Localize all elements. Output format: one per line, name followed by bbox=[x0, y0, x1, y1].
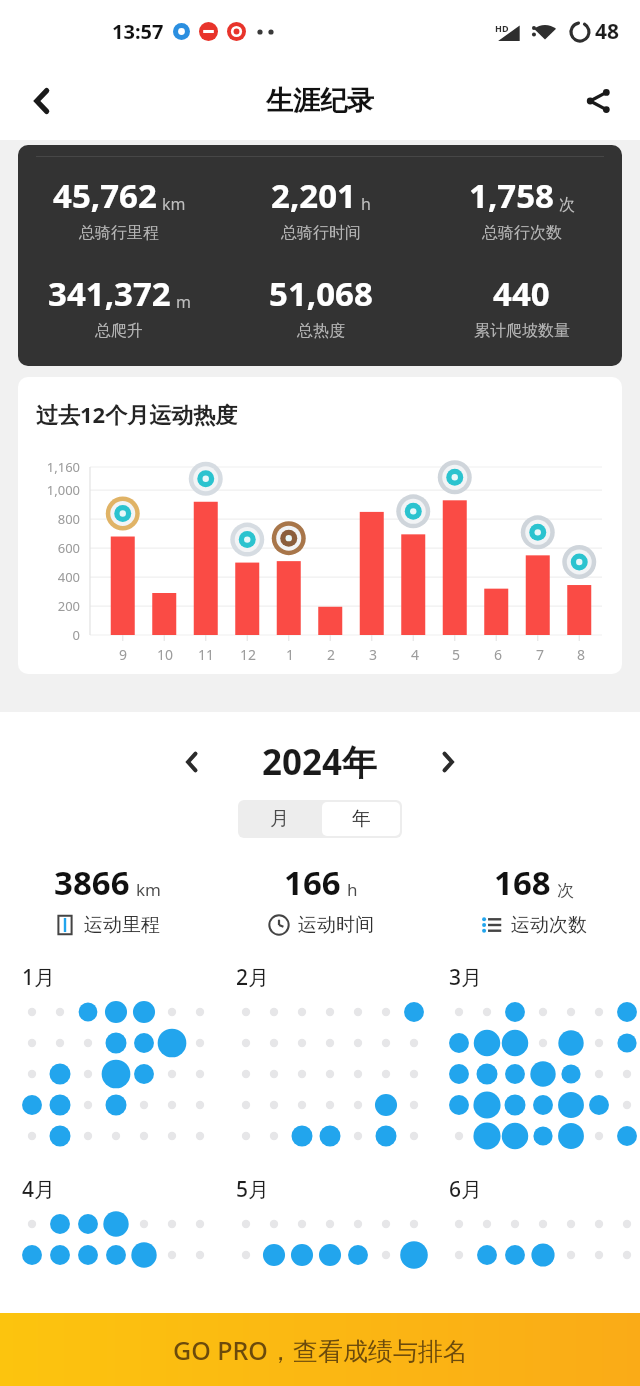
staticText: 9 bbox=[111, 645, 135, 664]
button[interactable]: 3月 bbox=[427, 963, 640, 1161]
staticText: 5 bbox=[444, 645, 468, 664]
staticText: 运动里程 bbox=[84, 913, 160, 937]
staticText: 总爬升 bbox=[95, 321, 143, 341]
staticText: 2 bbox=[319, 645, 343, 664]
staticText: 年 bbox=[352, 807, 371, 831]
staticText: 过去12个月运动热度 bbox=[36, 399, 238, 429]
staticText: 4 bbox=[403, 645, 427, 664]
staticText: HD bbox=[495, 22, 509, 34]
staticText: 2024年 bbox=[262, 738, 378, 786]
staticText: 7 bbox=[528, 645, 552, 664]
button[interactable]: 4月 bbox=[0, 1175, 214, 1280]
staticText: 51,068 bbox=[269, 271, 373, 316]
staticText: 3866 bbox=[54, 860, 130, 905]
staticText: 341,372 bbox=[48, 271, 171, 316]
staticText: 生涯纪录 bbox=[266, 84, 374, 118]
staticText: 800 bbox=[22, 510, 80, 528]
staticText: 1月 bbox=[22, 963, 56, 992]
button[interactable]: 6月 bbox=[427, 1175, 640, 1280]
staticText: 总骑行次数 bbox=[482, 223, 562, 243]
staticText: GO PRO，查看成绩与排名 bbox=[173, 1333, 468, 1367]
button[interactable]: 过去12个月运动热度 bbox=[18, 377, 622, 674]
button[interactable]: Previous year bbox=[166, 736, 218, 788]
staticText: 2月 bbox=[236, 963, 270, 992]
staticText: 3 bbox=[361, 645, 385, 664]
staticText: 13:57 bbox=[112, 18, 164, 45]
staticText: h bbox=[361, 193, 371, 215]
staticText: 5月 bbox=[236, 1175, 270, 1204]
staticText: 总骑行里程 bbox=[79, 223, 159, 243]
staticText: 运动次数 bbox=[511, 913, 587, 937]
staticText: 总热度 bbox=[297, 321, 345, 341]
button[interactable]: 月 bbox=[238, 800, 320, 838]
staticText: 45,762 bbox=[53, 173, 157, 218]
button[interactable]: 1月 bbox=[0, 963, 214, 1161]
staticText: 6 bbox=[486, 645, 510, 664]
button[interactable]: GO PRO，查看成绩与排名 bbox=[0, 1313, 640, 1386]
staticText: km bbox=[136, 878, 161, 901]
staticText: 12 bbox=[236, 645, 260, 664]
staticText: 次 bbox=[559, 195, 575, 215]
staticText: 168 bbox=[494, 860, 551, 905]
staticText: 1,160 bbox=[22, 458, 80, 476]
button[interactable]: Next year bbox=[422, 736, 474, 788]
staticText: 运动时间 bbox=[298, 913, 374, 937]
button[interactable]: 45,762 bbox=[18, 145, 622, 366]
staticText: 1,758 bbox=[469, 173, 554, 218]
staticText: 4月 bbox=[22, 1175, 56, 1204]
button[interactable]: Back bbox=[14, 73, 70, 129]
staticText: 1 bbox=[278, 645, 302, 664]
button[interactable]: Share bbox=[570, 73, 626, 129]
staticText: 10 bbox=[153, 645, 177, 664]
staticText: 8 bbox=[569, 645, 593, 664]
staticText: 400 bbox=[22, 568, 80, 586]
staticText: 累计爬坡数量 bbox=[474, 321, 570, 341]
button[interactable]: 2月 bbox=[214, 963, 427, 1161]
staticText: 440 bbox=[493, 271, 550, 316]
staticText: 次 bbox=[557, 880, 574, 901]
button[interactable]: 5月 bbox=[214, 1175, 427, 1280]
staticText: 2,201 bbox=[271, 173, 356, 218]
staticText: 3月 bbox=[449, 963, 483, 992]
staticText: km bbox=[162, 193, 186, 215]
staticText: 1,000 bbox=[22, 481, 80, 499]
staticText: 600 bbox=[22, 539, 80, 557]
staticText: 48 bbox=[595, 17, 620, 46]
staticText: h bbox=[347, 878, 358, 901]
staticText: 166 bbox=[284, 860, 341, 905]
button[interactable]: 年 bbox=[322, 802, 400, 836]
staticText: m bbox=[176, 291, 191, 313]
staticText: 0 bbox=[22, 626, 80, 644]
staticText: 6月 bbox=[449, 1175, 483, 1204]
staticText: 月 bbox=[270, 807, 289, 831]
staticText: 11 bbox=[194, 645, 218, 664]
staticText: 总骑行时间 bbox=[281, 223, 361, 243]
staticText: 200 bbox=[22, 597, 80, 615]
